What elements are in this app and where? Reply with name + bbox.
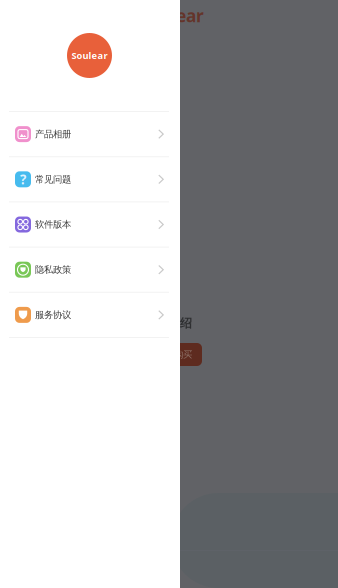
button[interactable]: 隐私政策 — [0, 248, 180, 292]
staticText: 常见问题 — [35, 174, 71, 185]
staticText: Soulear — [71, 49, 107, 62]
staticText: 立即购买 — [156, 349, 192, 360]
button[interactable]: ? — [0, 157, 180, 201]
staticText: ? — [20, 170, 26, 188]
button[interactable]: 服务协议 — [0, 293, 180, 337]
button[interactable]: 产品相册 — [0, 112, 180, 156]
staticText: 产品相册 — [35, 128, 71, 140]
staticText: 隐私政策 — [35, 264, 71, 275]
staticText: 服务协议 — [35, 309, 71, 321]
staticText: 产品介绍 — [144, 316, 192, 331]
button[interactable]: 软件版本 — [0, 202, 180, 247]
staticText: Soulear — [139, 4, 204, 27]
staticText: 软件版本 — [35, 219, 71, 230]
